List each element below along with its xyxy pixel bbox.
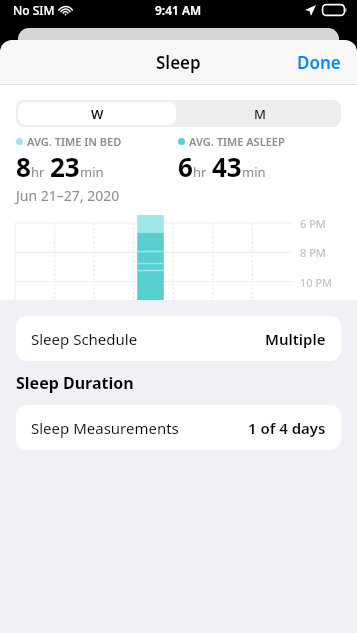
staticText: Fri [217,306,231,321]
staticText: Thu [177,306,197,321]
staticText: Tue [98,306,117,321]
staticText: 43 [212,149,242,184]
staticText: Sun [19,306,39,321]
staticText: Sleep Duration [16,372,134,394]
staticText: Sat [256,306,273,321]
staticText: AVG. TIME IN BED [27,134,122,149]
button[interactable]: Sleep Measurements [16,405,341,450]
staticText: min [242,163,266,181]
staticText: 8 PM [300,245,326,260]
button[interactable]: Sleep Schedule [16,316,341,361]
staticText: 6 [178,149,193,184]
staticText: hr [31,163,45,181]
staticText: Sleep Measurements [31,418,179,438]
button[interactable]: W [18,102,176,125]
staticText: 12 AM [300,304,333,319]
staticText: Multiple [265,329,326,349]
staticText: hr [193,163,207,181]
staticText: No SIM [13,2,55,18]
button[interactable]: Done [281,40,357,84]
staticText: M [254,105,266,123]
staticText: 9:41 AM [155,2,202,18]
staticText: W [91,105,104,123]
staticText: Sleep [156,51,201,74]
staticText: 8 [16,149,31,184]
staticText: 2 AM [300,333,327,348]
staticText: Done [297,51,341,73]
staticText: min [80,163,104,181]
staticText: Wed [138,306,161,321]
button[interactable]: M [178,100,341,127]
staticText: Jun 21–27, 2020 [16,186,120,205]
staticText: AVG. TIME ASLEEP [189,134,285,149]
staticText: 8 AM [300,421,327,436]
staticText: 6 PM [300,216,326,231]
staticText: 23 [50,149,80,184]
staticText: Sleep Schedule [31,329,138,349]
staticText: Mon [59,306,83,321]
staticText: 6 AM [300,392,327,407]
staticText: 1 of 4 days [248,418,326,438]
staticText: 10 PM [300,275,333,290]
